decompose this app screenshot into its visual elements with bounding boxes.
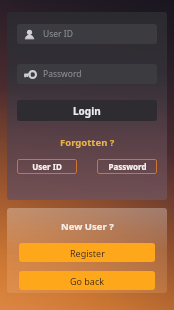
other: Password icon <box>23 68 36 81</box>
button[interactable]: User icon <box>17 24 157 44</box>
button[interactable]: Go back <box>19 271 155 290</box>
staticText: User ID <box>32 161 62 172</box>
staticText: Forgotten ? <box>60 136 115 149</box>
button[interactable]: Register <box>19 243 155 262</box>
staticText: User ID <box>43 28 73 40</box>
button[interactable]: Password icon <box>17 64 157 84</box>
staticText: Password <box>43 68 82 80</box>
other: User icon <box>23 28 36 41</box>
button[interactable]: Login <box>17 100 157 121</box>
staticText: New User ? <box>61 220 114 233</box>
staticText: Register <box>70 247 105 259</box>
staticText: Login <box>73 104 101 118</box>
staticText: Password <box>108 161 147 172</box>
staticText: Go back <box>70 275 105 287</box>
button[interactable]: Password <box>97 159 157 174</box>
button[interactable]: User ID <box>17 159 77 174</box>
